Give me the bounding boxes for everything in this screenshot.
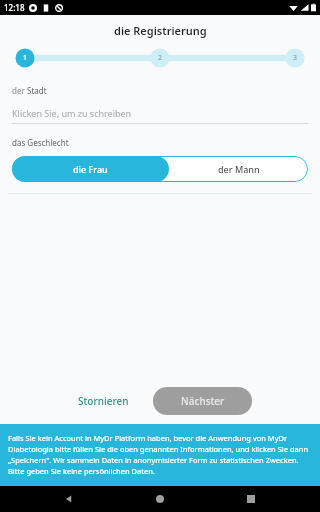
staticText: Klicken Sie, um zu schreiben (12, 107, 132, 119)
button[interactable]: Recent apps (238, 486, 264, 512)
staticText: Stadt (27, 85, 47, 96)
button[interactable]: Back (56, 486, 82, 512)
staticText: Falls Sie kein Account in MyDr Platform … (8, 433, 312, 476)
button[interactable]: Stornieren (72, 388, 135, 414)
button[interactable]: Home (147, 486, 173, 512)
staticText: Stornieren (78, 394, 129, 408)
staticText: 3 (293, 53, 298, 63)
staticText: der Mann (218, 163, 260, 175)
button[interactable]: Klicken Sie, um zu schreiben (12, 107, 308, 124)
staticText: der (12, 85, 27, 96)
staticText: 12:18 (4, 2, 25, 13)
staticText: 1 (23, 53, 28, 63)
staticText: 2 (158, 53, 163, 63)
button[interactable]: die Frau (12, 156, 169, 182)
button[interactable]: Nächster (153, 387, 252, 415)
staticText: das Geschlecht (12, 137, 69, 148)
button[interactable]: der Mann (169, 156, 308, 182)
staticText: die Registrierung (114, 23, 207, 38)
staticText: die Frau (73, 163, 108, 175)
staticText: Nächster (181, 394, 225, 408)
